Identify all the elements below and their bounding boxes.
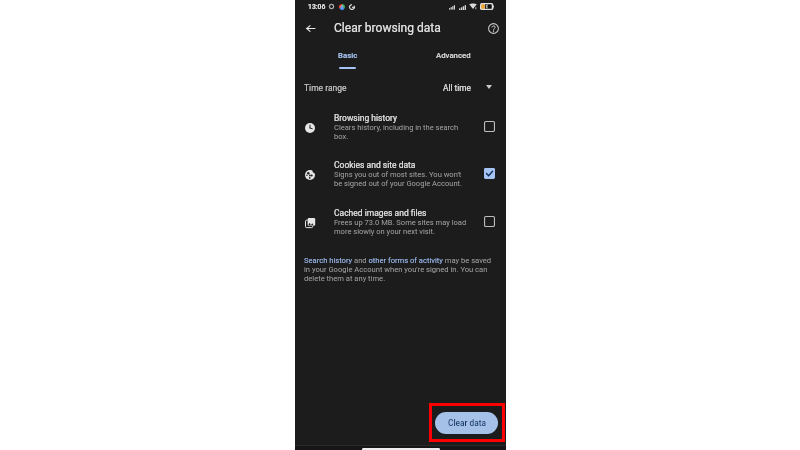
staticText: All time (443, 83, 471, 93)
staticText: 13:06 (308, 3, 326, 11)
button[interactable]: Checked (481, 165, 497, 181)
button[interactable]: Unchecked (481, 118, 497, 134)
staticText: Clear data (448, 418, 486, 428)
staticText: Signs you out of most sites. You won't b… (334, 170, 463, 188)
staticText: Advanced (436, 51, 471, 60)
staticText: Cached images and files (334, 208, 427, 218)
staticText: Frees up 73.0 MB. Some sites may load mo… (334, 218, 467, 236)
button[interactable]: Time range (295, 76, 506, 99)
button[interactable]: Navigate up (296, 14, 324, 42)
button[interactable]: Search history and other forms of activi… (304, 256, 496, 283)
button[interactable]: Browsing history (295, 111, 506, 159)
button[interactable]: Cached images and files (295, 206, 506, 254)
staticText: Browsing history (334, 113, 398, 123)
button[interactable]: Clear data (435, 412, 498, 434)
staticText: Clears history, including in the search … (334, 123, 459, 141)
button[interactable]: Basic (295, 44, 400, 72)
button[interactable]: Advanced (400, 44, 506, 72)
button[interactable]: Cookies and site data (295, 158, 506, 206)
staticText: Search history and other forms of activi… (304, 256, 496, 283)
staticText: Basic (338, 51, 358, 60)
button[interactable]: Unchecked (481, 213, 497, 229)
staticText: Clear browsing data (334, 21, 441, 35)
button[interactable]: Help (479, 14, 507, 42)
staticText: Cookies and site data (334, 160, 416, 170)
staticText: Time range (304, 83, 347, 93)
